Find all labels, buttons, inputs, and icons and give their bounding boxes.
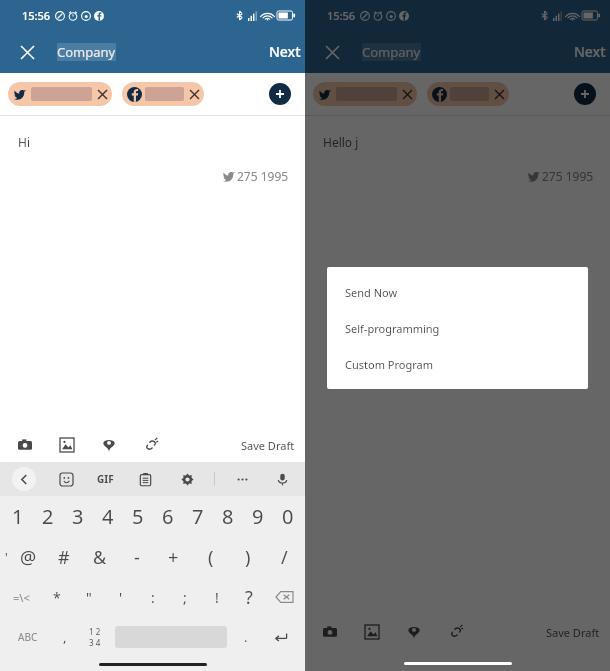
- button[interactable]: Camera: [14, 434, 36, 456]
- button[interactable]: ?: [233, 577, 265, 617]
- button[interactable]: ': [105, 577, 137, 617]
- staticText: GIF: [97, 472, 114, 486]
- staticText: ": [86, 588, 92, 607]
- staticText: 7: [192, 503, 204, 530]
- button[interactable]: 8: [213, 496, 243, 537]
- button[interactable]: ): [229, 537, 266, 577]
- staticText: Self-programming: [345, 321, 440, 336]
- button[interactable]: More: [231, 468, 253, 490]
- button[interactable]: =\<: [2, 577, 41, 617]
- button[interactable]: /: [266, 537, 303, 577]
- staticText: ': [5, 549, 8, 565]
- button[interactable]: Add account: [574, 83, 596, 105]
- button[interactable]: [122, 82, 204, 106]
- button[interactable]: 1 2: [78, 617, 111, 657]
- button[interactable]: 2: [33, 496, 63, 537]
- button[interactable]: Save Draft: [241, 438, 295, 453]
- button[interactable]: *: [41, 577, 73, 617]
- button[interactable]: Self-programming: [345, 321, 588, 339]
- button[interactable]: Voice input: [271, 468, 293, 490]
- staticText: Save Draft: [241, 438, 295, 453]
- staticText: !: [215, 588, 219, 607]
- staticText: 275 1995: [542, 168, 594, 184]
- staticText: 3: [72, 503, 84, 530]
- button[interactable]: Settings: [176, 468, 198, 490]
- staticText: #: [58, 545, 70, 570]
- button[interactable]: 0: [273, 496, 303, 537]
- button[interactable]: Gallery: [56, 434, 78, 456]
- button[interactable]: @: [10, 537, 46, 577]
- staticText: Next: [269, 42, 301, 61]
- button[interactable]: Gallery: [361, 621, 383, 643]
- button[interactable]: -: [118, 537, 155, 577]
- button[interactable]: 4: [93, 496, 123, 537]
- staticText: Hello j: [323, 134, 359, 150]
- button[interactable]: Back: [12, 467, 36, 491]
- staticText: 2: [42, 503, 54, 530]
- staticText: Company: [362, 43, 421, 61]
- button[interactable]: 1: [2, 496, 33, 537]
- button[interactable]: :: [137, 577, 169, 617]
- button[interactable]: ;: [169, 577, 201, 617]
- button[interactable]: [427, 82, 509, 106]
- staticText: Company: [57, 43, 116, 61]
- button[interactable]: Custom Program: [345, 357, 588, 375]
- button[interactable]: 6: [153, 496, 183, 537]
- button[interactable]: 3: [63, 496, 93, 537]
- button[interactable]: ,: [51, 617, 78, 657]
- staticText: Next: [574, 42, 606, 61]
- staticText: ABC: [18, 630, 38, 644]
- button[interactable]: Close: [14, 39, 40, 65]
- button[interactable]: Location: [98, 434, 120, 456]
- button[interactable]: [313, 82, 417, 106]
- button[interactable]: Link: [445, 621, 467, 643]
- button[interactable]: Next: [574, 42, 610, 61]
- staticText: =\<: [13, 590, 30, 605]
- button[interactable]: #: [46, 537, 82, 577]
- button[interactable]: Save Draft: [546, 625, 600, 640]
- button[interactable]: Location: [403, 621, 425, 643]
- button[interactable]: Link: [140, 434, 162, 456]
- button[interactable]: [8, 82, 112, 106]
- button[interactable]: 5: [123, 496, 153, 537]
- button[interactable]: 9: [243, 496, 273, 537]
- staticText: 6: [162, 503, 174, 530]
- staticText: Custom Program: [345, 357, 433, 372]
- button[interactable]: 7: [183, 496, 213, 537]
- staticText: 9: [252, 503, 264, 530]
- staticText: Save Draft: [546, 625, 600, 640]
- staticText: ): [245, 545, 251, 570]
- staticText: @: [20, 545, 37, 570]
- staticText: 275 1995: [237, 168, 289, 184]
- staticText: 5: [132, 503, 144, 530]
- button[interactable]: &: [82, 537, 118, 577]
- staticText: /: [281, 545, 288, 570]
- staticText: 4: [102, 503, 114, 530]
- button[interactable]: Backspace: [265, 577, 303, 617]
- button[interactable]: Send Now: [345, 285, 588, 303]
- staticText: *: [53, 588, 61, 607]
- staticText: ;: [183, 588, 187, 607]
- staticText: .: [244, 628, 248, 646]
- staticText: 3 4: [89, 637, 101, 648]
- staticText: Hi: [18, 134, 30, 150]
- button[interactable]: !: [201, 577, 233, 617]
- button[interactable]: Enter: [261, 617, 301, 657]
- staticText: 1: [12, 503, 24, 530]
- button[interactable]: Stickers: [55, 468, 77, 490]
- button[interactable]: +: [155, 537, 192, 577]
- button[interactable]: ": [73, 577, 105, 617]
- button[interactable]: Clipboard: [134, 468, 156, 490]
- button[interactable]: Close: [319, 39, 345, 65]
- staticText: (: [208, 545, 214, 570]
- staticText: 15:56: [22, 8, 51, 23]
- button[interactable]: ABC: [4, 617, 51, 657]
- button[interactable]: Camera: [319, 621, 341, 643]
- button[interactable]: (: [192, 537, 229, 577]
- button[interactable]: GIF: [97, 472, 114, 486]
- staticText: :: [151, 588, 155, 607]
- button[interactable]: .: [231, 617, 261, 657]
- button[interactable]: Add account: [269, 83, 291, 105]
- button[interactable]: Next: [269, 42, 305, 61]
